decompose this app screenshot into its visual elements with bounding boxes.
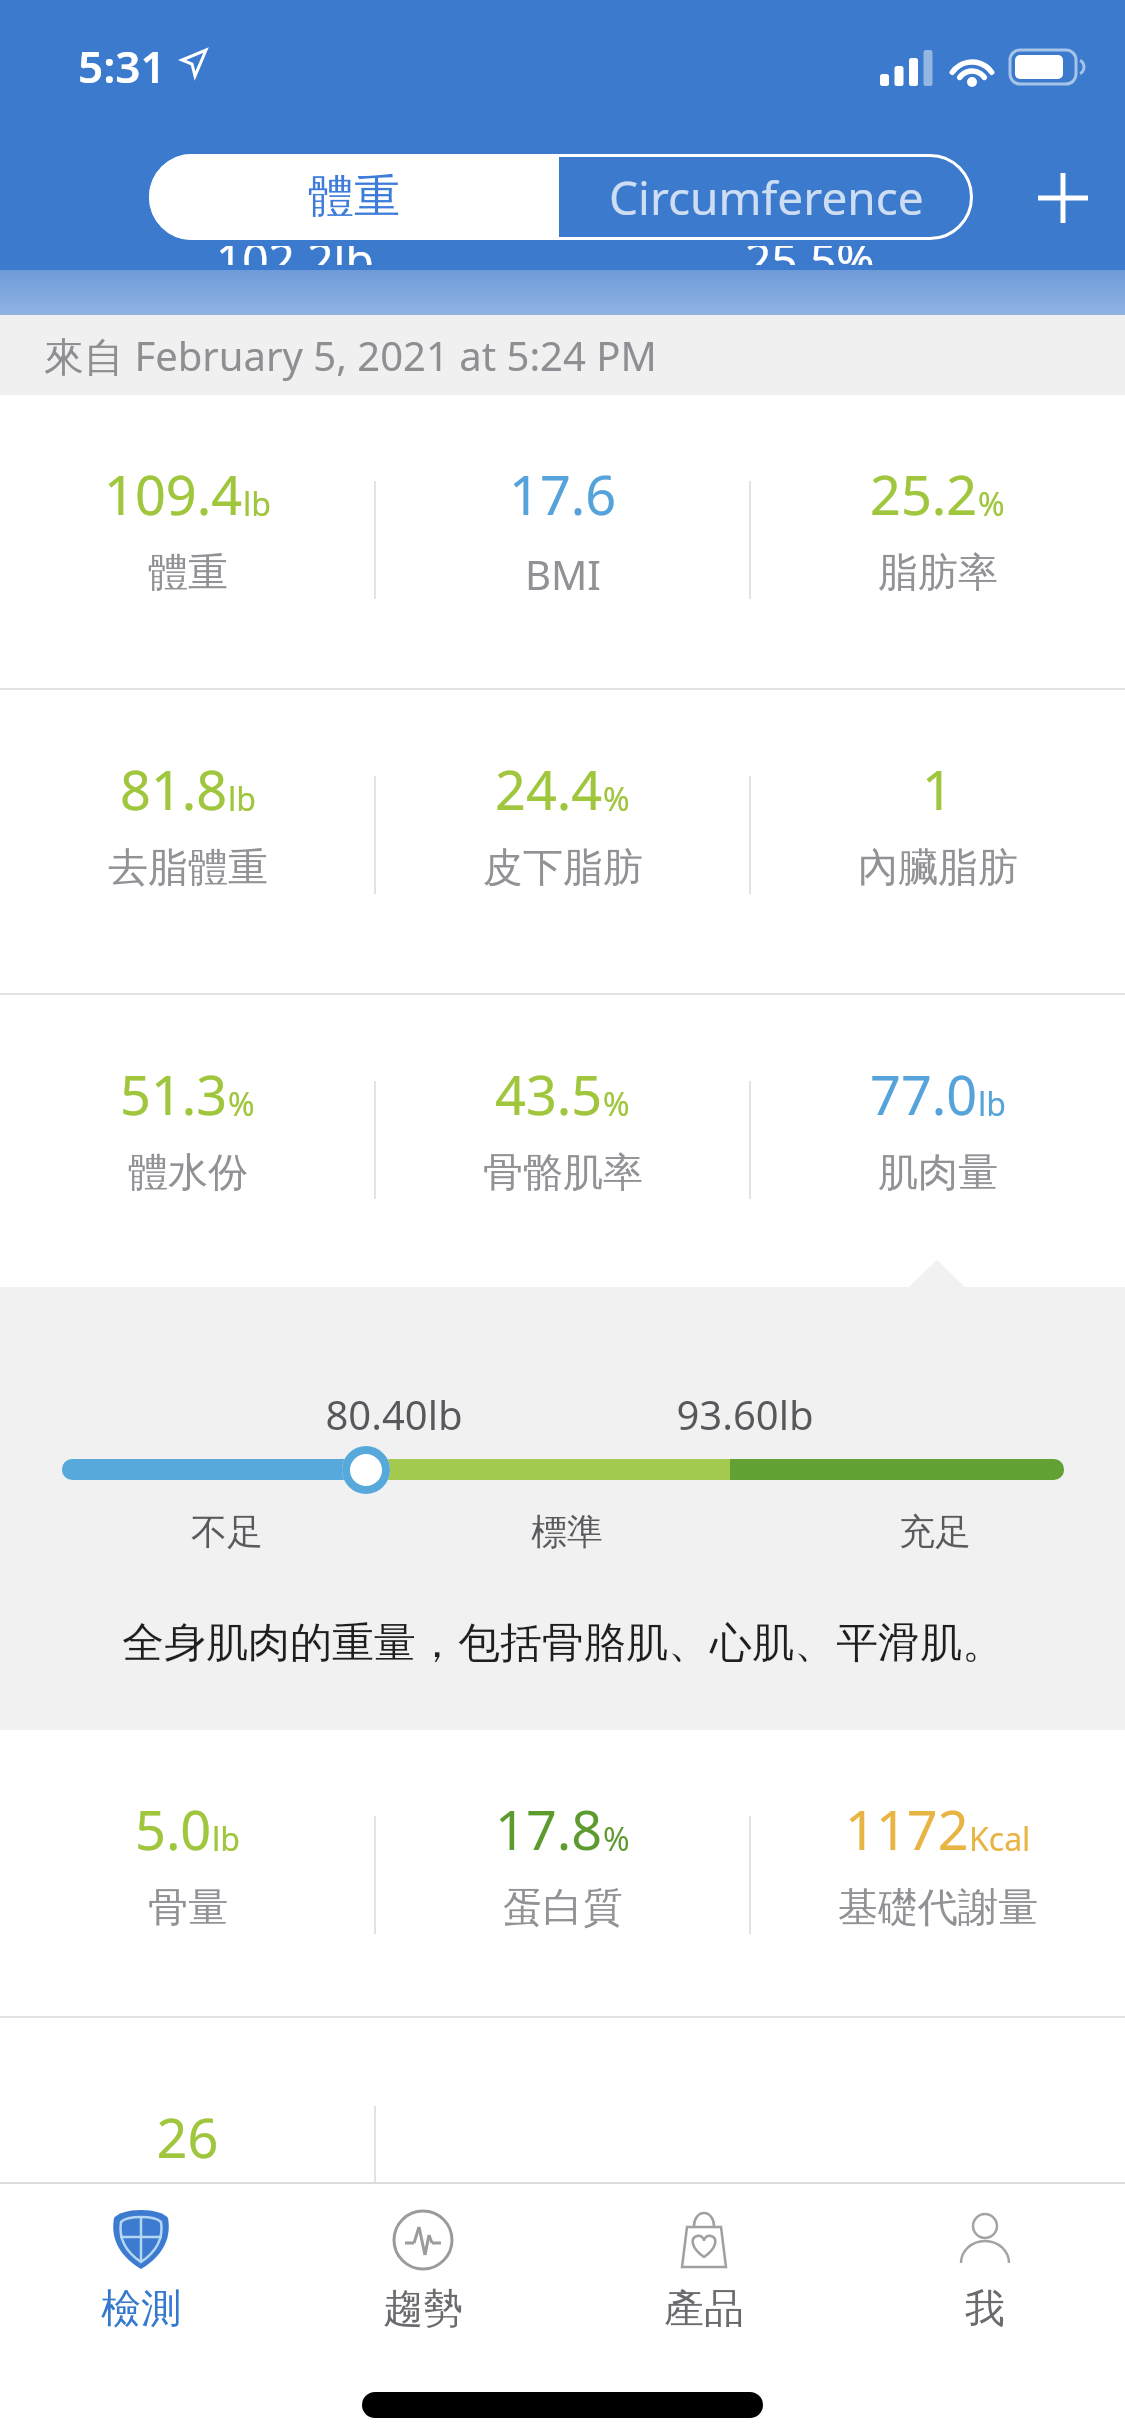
staticText: lb (228, 777, 256, 821)
staticText: 體重 (148, 547, 228, 597)
button[interactable]: 81.8 (0, 690, 375, 993)
button[interactable]: 24.4 (375, 690, 750, 993)
button[interactable]: Circumference (559, 154, 973, 240)
staticText: 蛋白質 (503, 1882, 623, 1932)
staticText: 17.8 (495, 1792, 603, 1866)
button[interactable]: 體重 (149, 154, 559, 240)
button[interactable]: 趨勢 (282, 2182, 563, 2436)
staticText: lb (212, 1817, 240, 1861)
button[interactable]: 產品 (563, 2182, 844, 2436)
staticText: 93.60lb (357, 1387, 1125, 1441)
staticText: 我 (965, 2283, 1005, 2333)
staticText: % (603, 777, 630, 821)
button[interactable]: 17.8 (375, 1730, 750, 2016)
button[interactable]: 43.5 (375, 995, 750, 1287)
staticText: 51.3 (120, 1057, 228, 1131)
staticText: 5:31 (78, 36, 166, 96)
staticText: 43.5 (495, 1057, 603, 1131)
staticText: % (603, 1082, 630, 1126)
button[interactable]: 17.6 (375, 395, 750, 688)
staticText: 骨量 (148, 1882, 228, 1932)
staticText: BMI (525, 547, 601, 601)
staticText: 骨骼肌率 (483, 1147, 643, 1197)
staticText: 充足 (899, 1509, 971, 1554)
button[interactable] (1023, 158, 1103, 238)
staticText: 體水份 (128, 1147, 248, 1197)
staticText: Kcal (969, 1817, 1031, 1861)
button[interactable]: 109.4 (0, 395, 375, 688)
staticText: 24.4 (495, 752, 603, 826)
staticText: 脂肪率 (878, 547, 998, 597)
staticText: 去脂體重 (108, 842, 268, 892)
staticText: % (978, 482, 1005, 526)
button[interactable]: 77.0 (750, 995, 1125, 1287)
staticText: lb (978, 1082, 1006, 1126)
staticText: 1172 (845, 1792, 969, 1866)
staticText: 25.5% (745, 246, 875, 265)
staticText: 5.0 (135, 1792, 212, 1866)
staticText: 體重 (308, 168, 400, 226)
staticText: 1 (922, 752, 953, 826)
staticText: 81.8 (120, 752, 228, 826)
staticText: 基礎代謝量 (838, 1882, 1038, 1932)
staticText: 77.0 (870, 1057, 978, 1131)
staticText: 109.4 (104, 457, 243, 531)
button[interactable]: 1 (750, 690, 1125, 993)
staticText: 檢測 (101, 2283, 181, 2333)
staticText: 80.40lb (0, 1387, 788, 1441)
staticText: 全身肌肉的重量，包括骨胳肌、心肌、平滑肌。 (122, 1617, 1004, 1670)
staticText: 102.2lb (216, 246, 374, 265)
button[interactable]: 5.0 (0, 1730, 375, 2016)
staticText: 肌肉量 (878, 1147, 998, 1197)
staticText: 25.2 (870, 457, 978, 531)
staticText: 皮下脂肪 (483, 842, 643, 892)
staticText: 標準 (531, 1509, 603, 1554)
button[interactable]: 25.2 (750, 395, 1125, 688)
staticText: lb (243, 482, 271, 526)
staticText: 17.6 (509, 457, 617, 531)
button[interactable]: 檢測 (0, 2182, 282, 2436)
staticText: 內臟脂肪 (858, 842, 1018, 892)
staticText: 不足 (191, 1509, 263, 1554)
staticText: % (228, 1082, 255, 1126)
staticText: 來自 February 5, 2021 at 5:24 PM (44, 328, 657, 383)
staticText: Circumference (609, 166, 924, 229)
button[interactable]: 我 (844, 2182, 1125, 2436)
staticText: 產品 (664, 2283, 744, 2333)
button[interactable]: 1172 (750, 1730, 1125, 2016)
button[interactable]: 51.3 (0, 995, 375, 1287)
staticText: 26 (0, 2100, 375, 2174)
staticText: % (603, 1817, 630, 1861)
staticText: 趨勢 (383, 2283, 463, 2333)
